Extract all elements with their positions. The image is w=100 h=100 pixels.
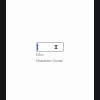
- staticText: Echo:: [36, 53, 45, 57]
- other: Cursor: [54, 45, 58, 49]
- staticText: Character Count: 0: [36, 58, 64, 63]
- button[interactable]: Text input field: [36, 42, 64, 52]
